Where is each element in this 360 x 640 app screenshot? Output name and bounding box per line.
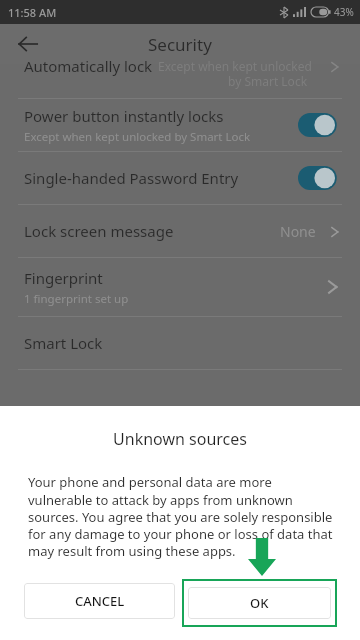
button[interactable]: CANCEL: [24, 583, 175, 619]
staticText: None: [280, 222, 316, 241]
staticText: Except when kept unlocked by Smart Lock: [24, 129, 251, 145]
staticText: 43%: [334, 5, 354, 19]
staticText: Security: [148, 33, 212, 56]
staticText: Smart Lock: [24, 333, 103, 353]
staticText: Automatically lock: [24, 56, 153, 76]
button[interactable]: Fingerprint: [0, 258, 360, 316]
staticText: Lock screen message: [24, 221, 174, 241]
button[interactable]: Lock screen message: [0, 205, 360, 257]
staticText: 1 fingerprint set up: [24, 291, 129, 307]
staticText: Fingerprint: [24, 268, 103, 288]
staticText: Except when kept unlocked: [158, 58, 312, 74]
staticText: Single-handed Password Entry: [24, 168, 239, 188]
button[interactable]: Power button instantly locks: [0, 99, 360, 151]
staticText: OK: [250, 594, 269, 612]
button[interactable]: Smart Lock: [0, 317, 360, 369]
staticText: 11:58 AM: [8, 5, 57, 20]
button[interactable]: Single-handed Password Entry: [298, 165, 342, 191]
staticText: Your phone and personal data are more vu…: [28, 473, 334, 560]
staticText: CANCEL: [75, 592, 125, 610]
button[interactable]: Power button instantly locks: [298, 112, 342, 138]
staticText: Power button instantly locks: [24, 106, 224, 126]
button[interactable]: OK: [182, 579, 337, 627]
button[interactable]: Automatically lock: [0, 64, 360, 98]
staticText: by Smart Lock: [228, 73, 308, 89]
button[interactable]: Back: [8, 24, 48, 64]
button[interactable]: Single-handed Password Entry: [0, 152, 360, 204]
staticText: Unknown sources: [0, 428, 360, 450]
